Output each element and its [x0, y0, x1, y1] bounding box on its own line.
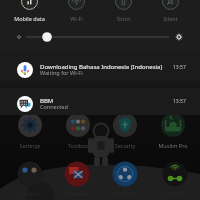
button[interactable]: Silent	[147, 0, 194, 24]
staticText: Mobile data	[14, 15, 45, 22]
staticText: Torch	[116, 15, 131, 22]
staticText: Muslim Pro	[149, 142, 197, 149]
staticText: 13:57	[173, 64, 186, 71]
staticText: Silent	[163, 15, 178, 22]
staticText: BBM	[40, 97, 54, 105]
staticText: Waiting for Wi-Fi	[40, 69, 83, 76]
button[interactable]: BBM	[0, 88, 200, 117]
button[interactable]: Downloading Bahasa Indonesia (Indonesia)	[0, 52, 200, 83]
button[interactable]: Mobile data	[6, 0, 53, 24]
staticText: Toolbox	[54, 142, 102, 149]
button[interactable]: Torch	[100, 0, 147, 24]
button[interactable]: Brightness	[0, 30, 200, 44]
staticText: Downloading Bahasa Indonesia (Indonesia)	[40, 63, 163, 71]
staticText: Connected	[40, 103, 68, 110]
staticText: Settings	[6, 142, 54, 149]
staticText: 13:57	[173, 98, 186, 105]
staticText: Gallery	[6, 190, 54, 197]
staticText: Wi-Fi	[70, 15, 83, 22]
button[interactable]: Wi-Fi	[53, 0, 100, 24]
staticText: Security	[101, 142, 149, 149]
